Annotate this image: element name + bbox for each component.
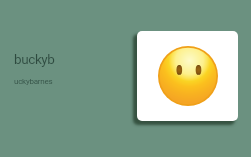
staticText: buckyb	[14, 51, 55, 67]
button[interactable]	[137, 31, 238, 121]
staticText: uckybarnes	[14, 77, 53, 86]
